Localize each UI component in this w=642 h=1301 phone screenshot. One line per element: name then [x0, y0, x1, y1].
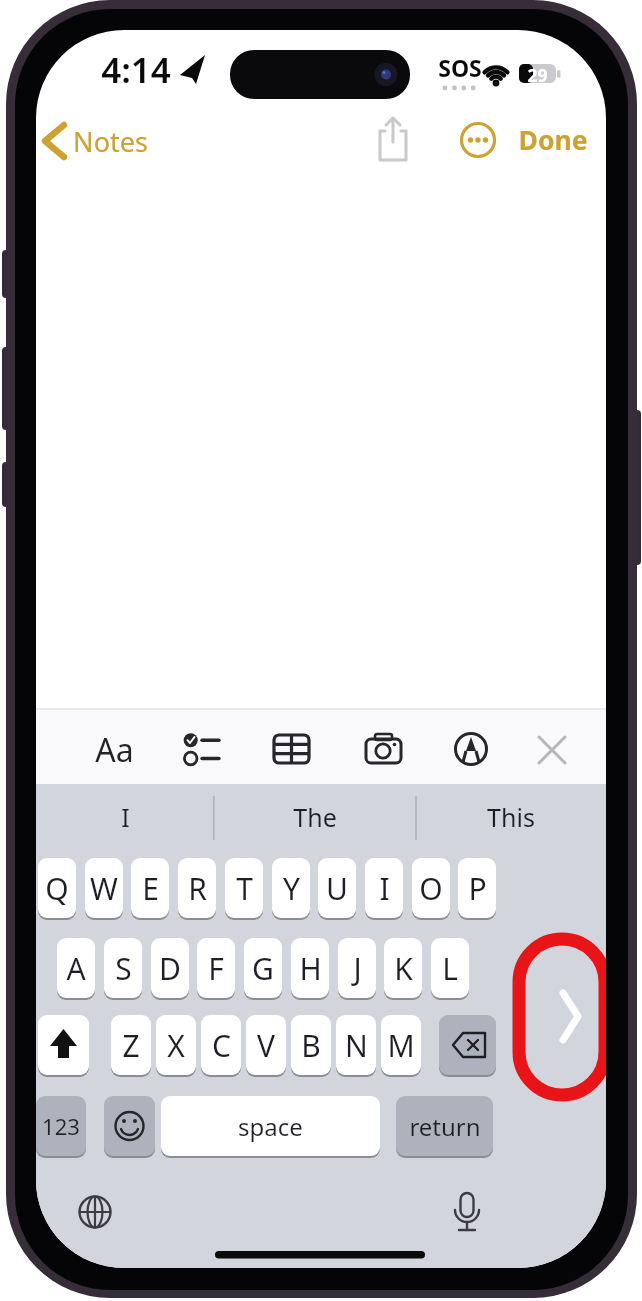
staticText: Done: [518, 122, 588, 158]
button[interactable]: X: [156, 1015, 196, 1075]
button[interactable]: A: [57, 938, 95, 998]
button[interactable]: R: [178, 858, 216, 918]
button[interactable]: [443, 725, 499, 775]
button[interactable]: [264, 725, 320, 775]
staticText: 29: [527, 63, 548, 84]
button[interactable]: The: [216, 788, 414, 846]
button[interactable]: space: [161, 1096, 380, 1156]
button[interactable]: This: [418, 788, 604, 846]
staticText: E: [142, 868, 159, 909]
button[interactable]: C: [201, 1015, 241, 1075]
staticText: O: [419, 868, 443, 909]
staticText: 4:14: [101, 46, 171, 88]
button[interactable]: U: [318, 858, 356, 918]
staticText: K: [394, 948, 413, 989]
button[interactable]: E: [131, 858, 169, 918]
button[interactable]: M: [381, 1015, 421, 1075]
button[interactable]: Q: [38, 858, 76, 918]
button[interactable]: [104, 1096, 155, 1156]
staticText: Notes: [73, 123, 148, 160]
staticText: This: [487, 800, 535, 834]
staticText: G: [252, 948, 274, 989]
staticText: U: [326, 868, 348, 909]
button[interactable]: [541, 970, 601, 1070]
staticText: I: [379, 868, 390, 909]
staticText: F: [208, 948, 224, 989]
staticText: X: [167, 1025, 185, 1066]
button[interactable]: Done: [503, 121, 603, 159]
button[interactable]: V: [246, 1015, 286, 1075]
button[interactable]: H: [291, 938, 329, 998]
staticText: V: [257, 1025, 275, 1066]
staticText: C: [212, 1025, 231, 1066]
staticText: W: [90, 868, 118, 909]
button[interactable]: S: [104, 938, 142, 998]
staticText: return: [409, 1110, 481, 1143]
staticText: I: [121, 800, 130, 834]
staticText: Aa: [95, 728, 134, 768]
staticText: B: [301, 1025, 321, 1066]
staticText: N: [345, 1025, 368, 1066]
staticText: space: [238, 1110, 303, 1143]
staticText: SOS: [438, 52, 482, 83]
button[interactable]: N: [336, 1015, 376, 1075]
button[interactable]: J: [338, 938, 376, 998]
button[interactable]: [371, 115, 416, 165]
staticText: D: [159, 948, 181, 989]
button[interactable]: return: [396, 1096, 493, 1156]
button[interactable]: F: [197, 938, 235, 998]
button[interactable]: P: [458, 858, 496, 918]
staticText: H: [299, 948, 322, 989]
staticText: L: [442, 948, 458, 989]
staticText: The: [293, 800, 337, 834]
button[interactable]: I: [38, 788, 212, 846]
button[interactable]: G: [244, 938, 282, 998]
button[interactable]: 123: [36, 1096, 86, 1156]
button[interactable]: Notes: [60, 122, 160, 160]
staticText: Y: [283, 868, 300, 909]
button[interactable]: I: [365, 858, 403, 918]
button[interactable]: [38, 1015, 89, 1075]
staticText: R: [188, 868, 207, 909]
staticText: Z: [122, 1025, 140, 1066]
staticText: S: [115, 948, 132, 989]
button[interactable]: [176, 725, 232, 775]
staticText: P: [468, 868, 487, 909]
button[interactable]: Y: [272, 858, 310, 918]
staticText: M: [387, 1025, 415, 1066]
button[interactable]: Z: [111, 1015, 151, 1075]
staticText: A: [66, 948, 86, 989]
button[interactable]: D: [151, 938, 189, 998]
button[interactable]: [524, 725, 580, 775]
button[interactable]: [456, 118, 501, 163]
button[interactable]: B: [291, 1015, 331, 1075]
staticText: 123: [42, 1111, 80, 1141]
staticText: T: [236, 868, 253, 909]
staticText: J: [353, 948, 362, 989]
button[interactable]: [439, 1015, 496, 1075]
button[interactable]: T: [225, 858, 263, 918]
button[interactable]: Aa: [84, 728, 144, 768]
button[interactable]: W: [85, 858, 123, 918]
button[interactable]: K: [384, 938, 422, 998]
staticText: Q: [45, 868, 69, 909]
button[interactable]: [356, 725, 412, 775]
button[interactable]: L: [431, 938, 469, 998]
button[interactable]: O: [412, 858, 450, 918]
